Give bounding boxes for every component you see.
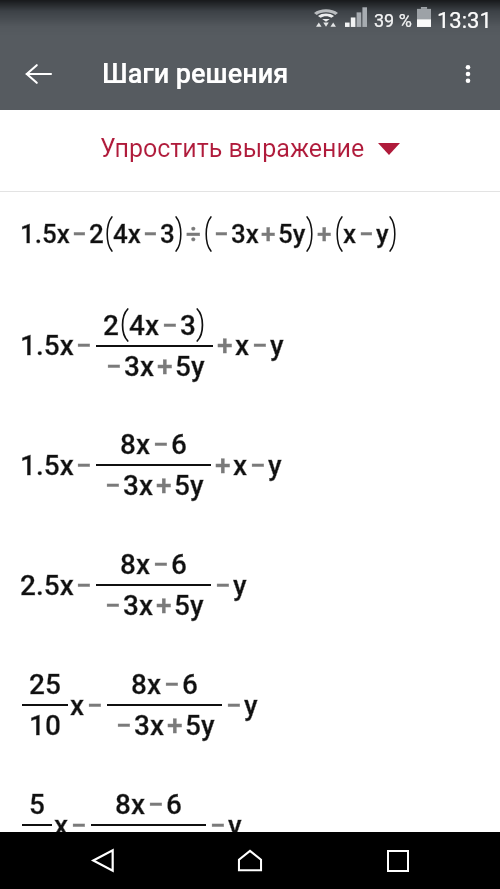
- staticText: −: [148, 788, 164, 821]
- staticText: 2.5x: [20, 569, 74, 602]
- staticText: −: [252, 329, 268, 362]
- staticText: −: [164, 668, 180, 701]
- staticText: 5y: [185, 709, 215, 742]
- staticText: −: [153, 548, 169, 581]
- staticText: ÷: [186, 219, 201, 249]
- staticText: −: [105, 589, 121, 622]
- staticText: x: [233, 449, 248, 482]
- staticText: 2.5x: [20, 569, 74, 602]
- staticText: 3x: [123, 469, 154, 502]
- staticText: Упростить выражение: [100, 134, 365, 163]
- staticText: 3x: [124, 350, 155, 383]
- staticText: +: [215, 449, 231, 482]
- button[interactable]: Back: [13, 49, 63, 99]
- button[interactable]: Recents: [353, 832, 443, 889]
- staticText: −: [105, 589, 121, 622]
- staticText: 1.5x: [20, 449, 74, 482]
- staticText: −: [71, 809, 87, 842]
- staticText: −: [359, 219, 374, 249]
- staticText: 5y: [174, 589, 204, 622]
- staticText: 8x: [120, 548, 151, 581]
- staticText: y: [268, 449, 282, 482]
- staticText: 1.5x: [20, 449, 74, 482]
- staticText: −: [162, 309, 178, 342]
- staticText: −: [214, 219, 229, 249]
- staticText: 3x: [134, 709, 165, 742]
- staticText: 3x: [231, 219, 259, 249]
- staticText: −: [116, 709, 132, 742]
- button[interactable]: Home: [205, 832, 295, 889]
- staticText: 5y: [175, 350, 205, 383]
- staticText: 3x: [124, 350, 155, 383]
- staticText: y: [228, 809, 242, 842]
- staticText: 6: [171, 428, 187, 461]
- staticText: x: [235, 329, 250, 362]
- staticText: Шаги решения: [102, 58, 289, 90]
- staticText: 4x: [129, 309, 160, 342]
- staticText: −: [250, 449, 266, 482]
- staticText: −: [72, 219, 87, 249]
- staticText: −: [252, 329, 268, 362]
- staticText: 2: [89, 219, 104, 249]
- staticText: y: [244, 689, 258, 722]
- staticText: +: [215, 449, 231, 482]
- staticText: −: [164, 668, 180, 701]
- staticText: y: [270, 329, 284, 362]
- staticText: x: [235, 329, 250, 362]
- staticText: −: [162, 309, 178, 342]
- staticText: −: [153, 548, 169, 581]
- staticText: 6: [171, 548, 187, 581]
- staticText: 1.5x: [20, 219, 70, 249]
- staticText: 4x: [113, 219, 141, 249]
- staticText: +: [157, 350, 173, 383]
- staticText: 6: [182, 668, 198, 701]
- staticText: 3: [180, 309, 196, 342]
- staticText: 3: [160, 219, 175, 249]
- staticText: 6: [182, 668, 198, 701]
- staticText: 5y: [174, 469, 204, 502]
- staticText: 1.5x: [20, 329, 74, 362]
- staticText: 5y: [169, 829, 199, 862]
- staticText: y: [376, 219, 389, 249]
- staticText: +: [317, 219, 332, 249]
- staticText: y: [233, 569, 247, 602]
- staticText: −: [143, 219, 158, 249]
- staticText: 8x: [131, 668, 162, 701]
- staticText: −: [210, 809, 226, 842]
- staticText: −: [87, 689, 103, 722]
- staticText: 2: [103, 309, 119, 342]
- staticText: +: [157, 350, 173, 383]
- staticText: 3: [160, 219, 175, 249]
- button[interactable]: Упростить выражение: [94, 128, 406, 169]
- staticText: x: [54, 809, 69, 842]
- staticText: 6: [171, 548, 187, 581]
- staticText: 8x: [131, 668, 162, 701]
- staticText: −: [87, 689, 103, 722]
- staticText: −: [72, 219, 87, 249]
- staticText: 5y: [175, 350, 205, 383]
- staticText: x: [343, 219, 357, 249]
- staticText: 5y: [278, 219, 306, 249]
- staticText: x: [233, 449, 248, 482]
- staticText: 3x: [123, 469, 154, 502]
- staticText: +: [156, 469, 172, 502]
- staticText: y: [376, 219, 389, 249]
- staticText: ÷: [186, 219, 201, 249]
- button[interactable]: More options: [445, 51, 491, 97]
- staticText: −: [105, 469, 121, 502]
- staticText: 3: [180, 309, 196, 342]
- staticText: +: [151, 829, 167, 862]
- staticText: −: [143, 219, 158, 249]
- staticText: y: [244, 689, 258, 722]
- staticText: 6: [166, 788, 182, 821]
- staticText: +: [156, 589, 172, 622]
- button[interactable]: Back: [58, 832, 148, 889]
- staticText: 25: [29, 668, 61, 701]
- staticText: y: [268, 449, 282, 482]
- staticText: −: [148, 788, 164, 821]
- staticText: 2: [103, 309, 119, 342]
- staticText: −: [100, 829, 116, 862]
- staticText: x: [54, 809, 69, 842]
- staticText: −: [76, 569, 92, 602]
- staticText: x: [70, 689, 85, 722]
